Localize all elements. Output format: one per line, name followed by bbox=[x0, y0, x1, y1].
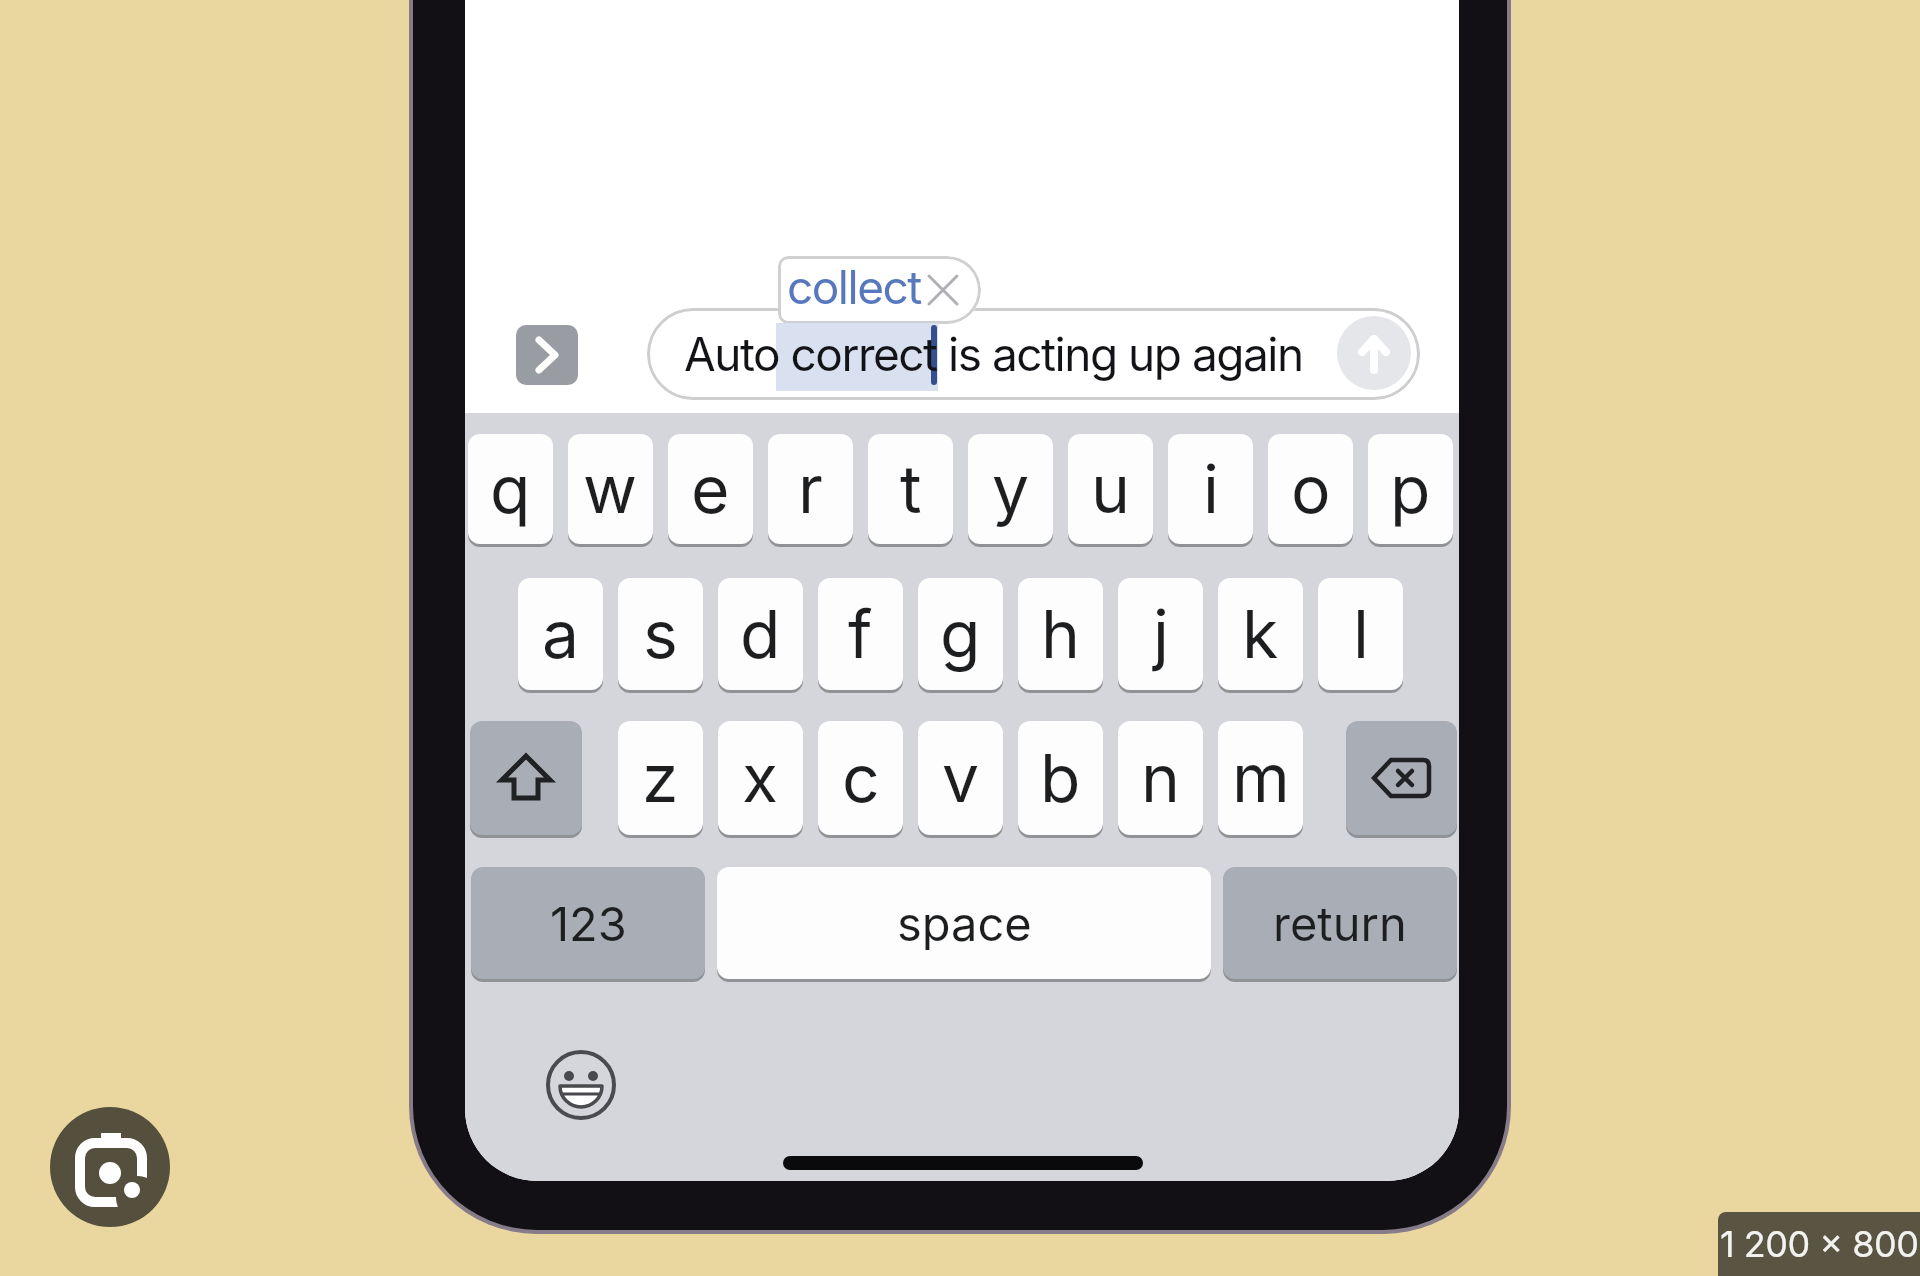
staticText: l bbox=[1353, 594, 1369, 674]
staticText: a bbox=[542, 594, 580, 674]
button[interactable] bbox=[50, 1107, 170, 1227]
button[interactable] bbox=[1346, 721, 1457, 835]
staticText: e bbox=[691, 449, 730, 529]
button[interactable] bbox=[516, 325, 578, 385]
button[interactable]: i bbox=[1168, 434, 1253, 544]
staticText: space bbox=[897, 895, 1032, 952]
button[interactable]: v bbox=[918, 721, 1003, 835]
button[interactable] bbox=[1337, 316, 1411, 390]
button[interactable]: q bbox=[468, 434, 553, 544]
button[interactable]: o bbox=[1268, 434, 1353, 544]
button[interactable]: n bbox=[1118, 721, 1203, 835]
button[interactable]: d bbox=[718, 578, 803, 690]
button[interactable]: m bbox=[1218, 721, 1303, 835]
staticText: collect bbox=[787, 259, 921, 315]
staticText: r bbox=[798, 449, 823, 529]
staticText: m bbox=[1232, 738, 1290, 818]
button[interactable]: 123 bbox=[471, 867, 705, 979]
button[interactable]: e bbox=[668, 434, 753, 544]
staticText: q bbox=[490, 449, 531, 529]
staticText: h bbox=[1041, 594, 1081, 674]
staticText: v bbox=[942, 738, 980, 818]
staticText: u bbox=[1091, 449, 1131, 529]
button[interactable]: space bbox=[717, 867, 1211, 979]
staticText: 123 bbox=[550, 895, 627, 952]
button[interactable]: y bbox=[968, 434, 1053, 544]
button[interactable]: w bbox=[568, 434, 653, 544]
staticText: f bbox=[848, 594, 873, 674]
staticText: Auto correct is acting up again bbox=[684, 326, 1303, 382]
button[interactable]: j bbox=[1118, 578, 1203, 690]
staticText: z bbox=[642, 738, 679, 818]
button[interactable]: c bbox=[818, 721, 903, 835]
staticText: k bbox=[1242, 594, 1279, 674]
button[interactable]: f bbox=[818, 578, 903, 690]
staticText: i bbox=[1203, 449, 1219, 529]
button[interactable]: z bbox=[618, 721, 703, 835]
button[interactable]: s bbox=[618, 578, 703, 690]
staticText: c bbox=[842, 738, 880, 818]
staticText: 1 200 × 800 bbox=[1720, 1222, 1919, 1266]
button[interactable]: x bbox=[718, 721, 803, 835]
button[interactable]: u bbox=[1068, 434, 1153, 544]
staticText: y bbox=[992, 449, 1030, 529]
staticText: t bbox=[900, 449, 922, 529]
staticText: x bbox=[742, 738, 779, 818]
staticText: n bbox=[1141, 738, 1180, 818]
button[interactable] bbox=[470, 721, 582, 835]
button[interactable]: p bbox=[1368, 434, 1453, 544]
staticText: p bbox=[1390, 449, 1431, 529]
button[interactable] bbox=[543, 1047, 619, 1123]
staticText: j bbox=[1153, 594, 1169, 674]
staticText: g bbox=[940, 594, 981, 674]
staticText: b bbox=[1040, 738, 1081, 818]
button[interactable]: h bbox=[1018, 578, 1103, 690]
button[interactable]: k bbox=[1218, 578, 1303, 690]
button[interactable]: a bbox=[518, 578, 603, 690]
button[interactable]: return bbox=[1223, 867, 1457, 979]
button[interactable]: l bbox=[1318, 578, 1403, 690]
button[interactable]: t bbox=[868, 434, 953, 544]
staticText: w bbox=[583, 449, 638, 529]
button[interactable]: r bbox=[768, 434, 853, 544]
staticText: return bbox=[1273, 895, 1407, 952]
staticText: s bbox=[643, 594, 678, 674]
button[interactable]: g bbox=[918, 578, 1003, 690]
staticText: d bbox=[740, 594, 781, 674]
button[interactable]: b bbox=[1018, 721, 1103, 835]
staticText: o bbox=[1291, 449, 1331, 529]
button[interactable] bbox=[778, 256, 981, 324]
